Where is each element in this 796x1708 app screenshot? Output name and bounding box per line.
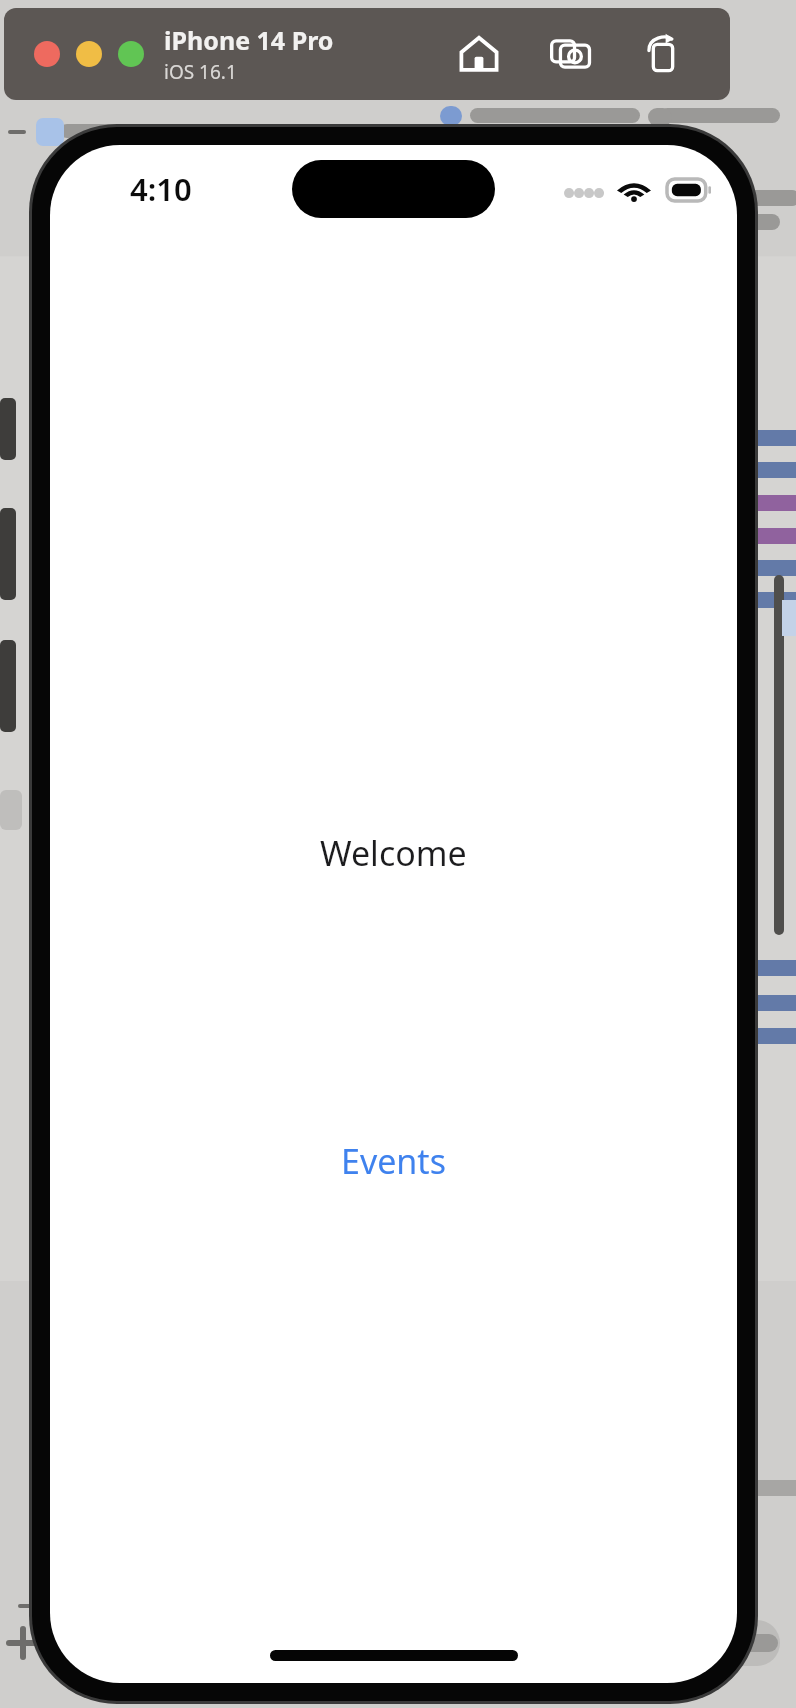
button[interactable]: Screenshot [544, 27, 598, 81]
staticText: 4:10 [130, 168, 192, 210]
button[interactable] [34, 41, 60, 67]
button[interactable]: Events [327, 1130, 460, 1192]
staticText: iPhone 14 Pro [164, 23, 334, 57]
button[interactable] [76, 41, 102, 67]
button[interactable] [118, 41, 144, 67]
staticText: iOS 16.1 [164, 59, 237, 85]
button[interactable]: Rotate [636, 27, 690, 81]
staticText: Events [341, 1138, 446, 1184]
staticText: Welcome [320, 830, 467, 876]
button[interactable]: Home [452, 27, 506, 81]
